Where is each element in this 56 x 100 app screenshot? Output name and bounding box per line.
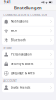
staticText: Personalization <box>11 53 32 56</box>
staticText: SYSTEM <box>3 46 11 50</box>
staticText: Bluetooth <box>11 38 26 42</box>
staticText: Security & Access <box>11 62 33 65</box>
button[interactable]: Bluetooth <box>2 36 54 45</box>
staticText: COMMUNICATION & CONNECTION <box>3 13 47 17</box>
button[interactable]: Security & Access <box>2 59 54 69</box>
staticText: ACCOUNT <box>3 79 16 83</box>
staticText: Invite Friends <box>11 86 30 89</box>
button[interactable]: Invite Friends <box>2 83 54 92</box>
staticText: 9:41 <box>4 0 11 4</box>
button[interactable]: Notifications <box>2 17 54 26</box>
button[interactable]: Personalization <box>2 50 54 59</box>
button[interactable]: Wi-Fi <box>2 26 54 36</box>
button[interactable]: Language & Area <box>2 69 54 78</box>
staticText: Notifications <box>11 20 28 23</box>
staticText: Einstellungen <box>14 5 42 10</box>
staticText: Wi-Fi <box>11 29 17 32</box>
staticText: Language & Area <box>11 71 34 75</box>
